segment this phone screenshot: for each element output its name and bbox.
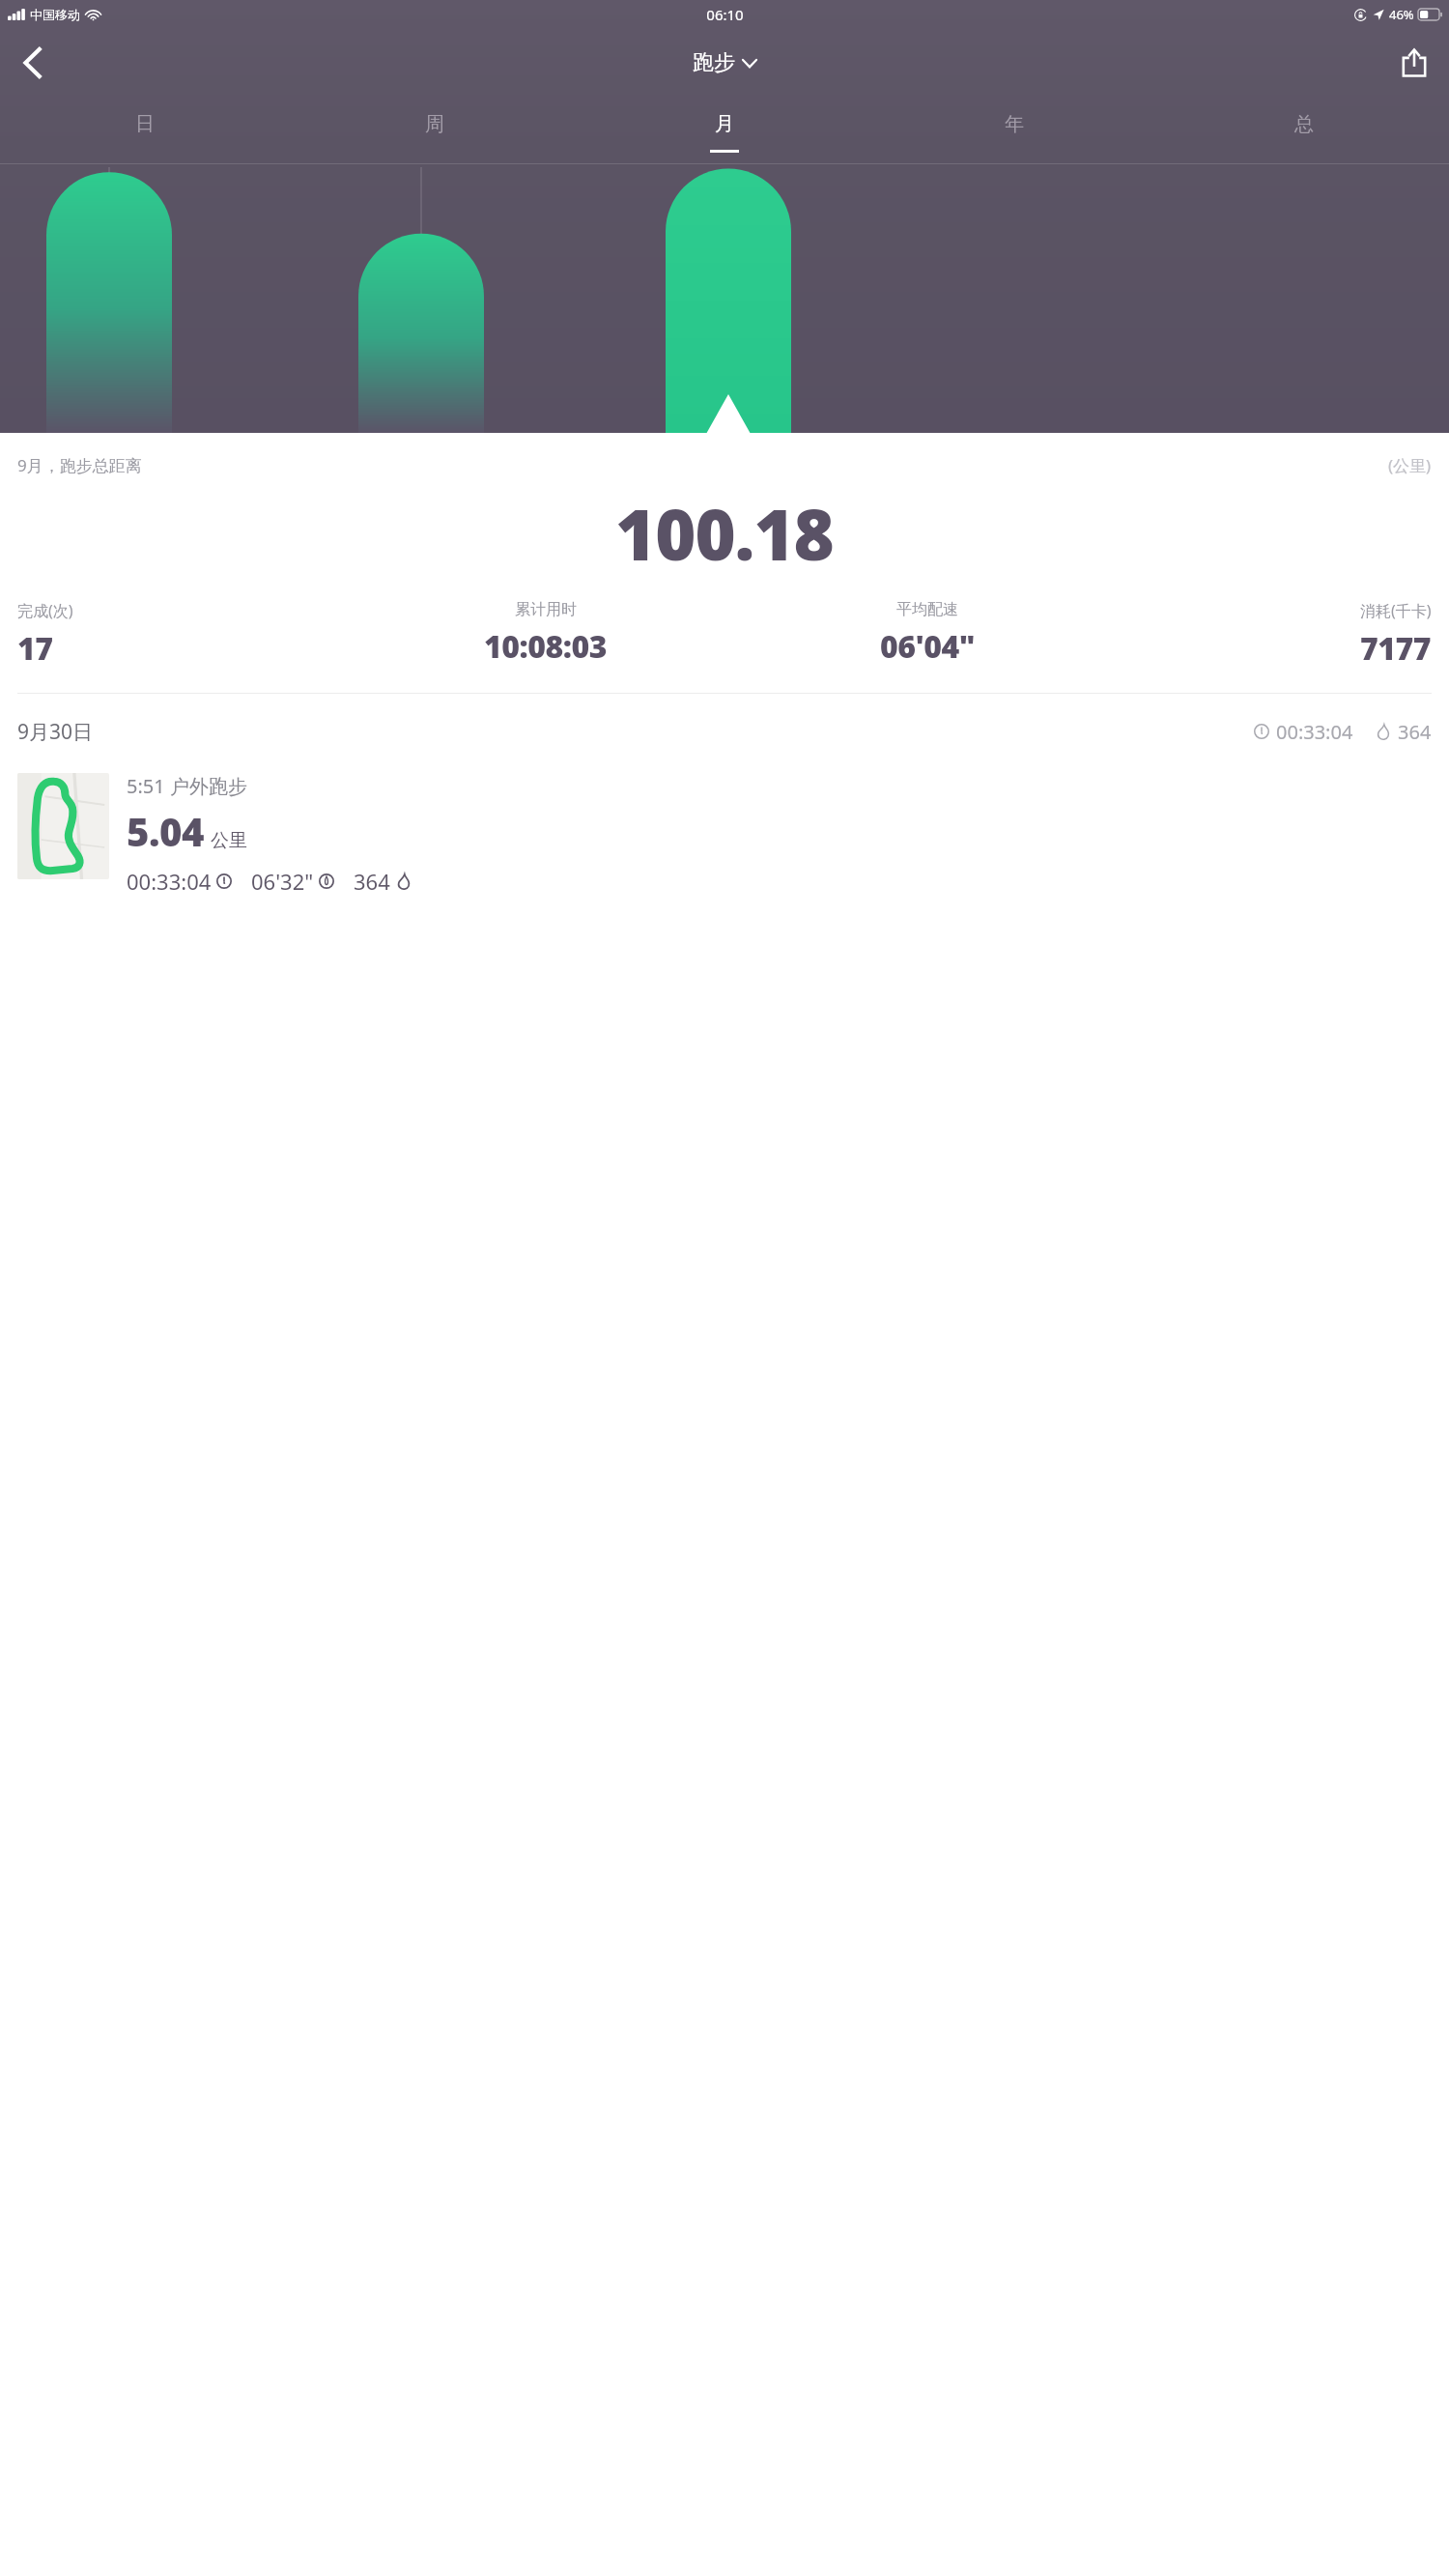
button[interactable]: 月 <box>580 97 869 164</box>
staticText: 17 <box>17 627 53 670</box>
button[interactable]: 周 <box>290 97 580 164</box>
staticText: 5.04 <box>127 805 204 857</box>
staticText: 跑步 <box>693 49 735 76</box>
staticText: 9月，跑步总距离 <box>17 454 142 476</box>
staticText: 5:51 户外跑步 <box>127 773 247 799</box>
staticText: 06'32" <box>251 867 314 896</box>
staticText: 周 <box>425 112 444 136</box>
staticText: 消耗(千卡) <box>1360 600 1432 621</box>
staticText: 10:08:03 <box>484 625 608 668</box>
button[interactable]: 年 <box>869 97 1159 164</box>
button[interactable]: 5:51 户外跑步 <box>0 769 1449 896</box>
staticText: 06:10 <box>706 5 744 24</box>
staticText: 平均配速 <box>896 600 958 619</box>
button[interactable]: 9月30日 <box>0 694 1449 769</box>
staticText: 日 <box>135 112 155 136</box>
staticText: 46% <box>1389 6 1414 23</box>
button[interactable]: 跑步 <box>693 49 756 76</box>
staticText: 9月30日 <box>17 718 94 746</box>
staticText: 完成(次) <box>17 600 73 621</box>
button[interactable]: Back <box>6 36 60 90</box>
staticText: 100.18 <box>615 486 834 581</box>
staticText: 364 <box>354 867 390 896</box>
staticText: 00:33:04 <box>1276 719 1353 745</box>
button[interactable]: Share <box>1387 36 1441 90</box>
staticText: 年 <box>1005 112 1024 136</box>
button[interactable]: 日 <box>0 97 290 164</box>
staticText: 06'04" <box>880 625 976 668</box>
staticText: 累计用时 <box>515 600 577 619</box>
staticText: 00:33:04 <box>127 867 212 896</box>
staticText: 总 <box>1294 112 1314 136</box>
staticText: 月 <box>715 112 734 136</box>
staticText: (公里) <box>1388 454 1432 476</box>
staticText: 7177 <box>1360 627 1432 670</box>
button[interactable]: 总 <box>1159 97 1449 164</box>
staticText: 公里 <box>211 829 247 852</box>
staticText: 364 <box>1398 719 1432 745</box>
staticText: 中国移动 <box>30 7 80 22</box>
